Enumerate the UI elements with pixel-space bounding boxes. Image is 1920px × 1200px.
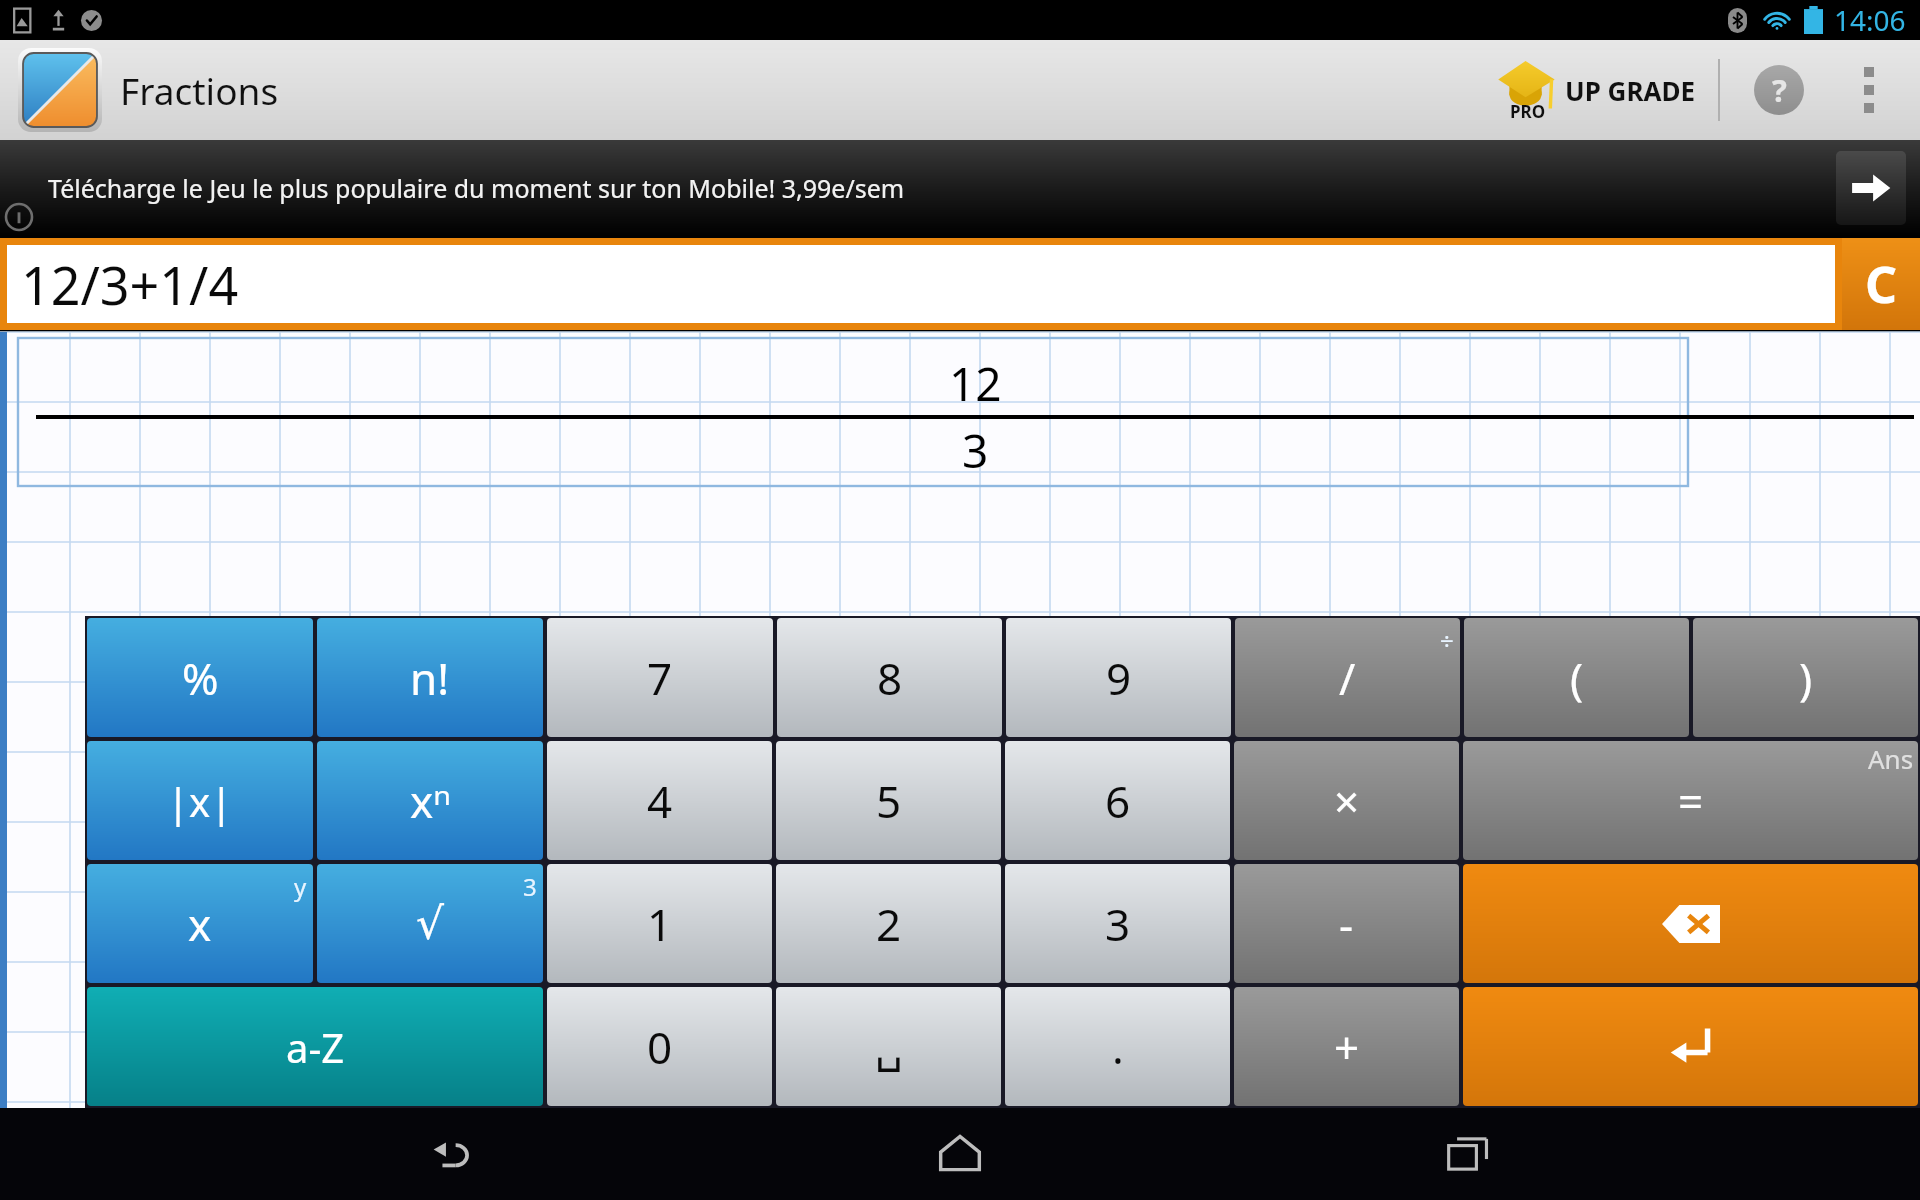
staticText: . bbox=[1112, 1017, 1124, 1077]
staticText: |x| bbox=[167, 774, 233, 828]
button[interactable]: Ad info bbox=[4, 202, 34, 232]
button[interactable]: a-Z bbox=[87, 987, 543, 1106]
button[interactable]: n! bbox=[317, 618, 543, 737]
button[interactable]: Open ad bbox=[1836, 151, 1906, 225]
staticText: 14:06 bbox=[1834, 1, 1906, 39]
button[interactable]: x bbox=[87, 864, 313, 983]
button[interactable]: 6 bbox=[1005, 741, 1230, 860]
button[interactable]: - bbox=[1234, 864, 1459, 983]
button[interactable]: Help bbox=[1746, 57, 1812, 123]
staticText: ? bbox=[1772, 69, 1787, 111]
button[interactable]: / bbox=[1235, 618, 1460, 737]
button[interactable]: × bbox=[1234, 741, 1459, 860]
staticText: xⁿ bbox=[410, 771, 451, 831]
staticText: ␣ bbox=[875, 1021, 903, 1072]
button[interactable]: Home bbox=[905, 1108, 1015, 1200]
button[interactable]: 12/3+1/4 bbox=[7, 245, 1835, 323]
staticText: a-Z bbox=[286, 1020, 345, 1074]
staticText: 12/3+1/4 bbox=[21, 249, 239, 320]
staticText: 7 bbox=[647, 648, 673, 708]
button[interactable]: Backspace bbox=[1463, 864, 1918, 983]
button[interactable]: 9 bbox=[1006, 618, 1231, 737]
staticText: 12 bbox=[949, 352, 1002, 415]
staticText: UP GRADE bbox=[1565, 73, 1696, 108]
button[interactable]: xⁿ bbox=[317, 741, 543, 860]
staticText: n! bbox=[410, 648, 450, 708]
staticText: 3 bbox=[523, 870, 537, 903]
button[interactable]: Enter bbox=[1463, 987, 1918, 1106]
staticText: ( bbox=[1570, 648, 1584, 708]
button[interactable]: 1 bbox=[547, 864, 772, 983]
button[interactable]: . bbox=[1005, 987, 1230, 1106]
staticText: - bbox=[1339, 894, 1354, 954]
staticText: = bbox=[1678, 771, 1704, 831]
button[interactable]: 4 bbox=[547, 741, 772, 860]
staticText: / bbox=[1339, 648, 1356, 708]
button[interactable]: 2 bbox=[776, 864, 1001, 983]
staticText: % bbox=[182, 648, 219, 708]
staticText: 1 bbox=[647, 894, 673, 954]
staticText: Télécharge le Jeu le plus populaire du m… bbox=[48, 171, 905, 205]
staticText: 9 bbox=[1106, 648, 1132, 708]
staticText: 6 bbox=[1105, 771, 1131, 831]
staticText: PRO bbox=[1510, 100, 1546, 123]
button[interactable]: 8 bbox=[777, 618, 1002, 737]
staticText: √ bbox=[416, 898, 445, 949]
staticText: × bbox=[1334, 771, 1360, 831]
button[interactable]: ) bbox=[1693, 618, 1918, 737]
staticText: + bbox=[1334, 1017, 1360, 1077]
button[interactable]: 0 bbox=[547, 987, 772, 1106]
staticText: 2 bbox=[876, 894, 902, 954]
staticText: 8 bbox=[877, 648, 903, 708]
staticText: 0 bbox=[647, 1017, 673, 1077]
staticText: 3 bbox=[962, 419, 989, 482]
button[interactable]: ( bbox=[1464, 618, 1689, 737]
button[interactable]: More options bbox=[1836, 57, 1902, 123]
staticText: y bbox=[294, 870, 307, 903]
staticText: 5 bbox=[876, 771, 902, 831]
staticText: 3 bbox=[1105, 894, 1131, 954]
button[interactable]: √ bbox=[317, 864, 543, 983]
staticText: ) bbox=[1799, 648, 1813, 708]
button[interactable]: C bbox=[1842, 238, 1920, 330]
button[interactable]: Télécharge le Jeu le plus populaire du m… bbox=[0, 140, 1920, 236]
button[interactable]: = bbox=[1463, 741, 1918, 860]
button[interactable]: ␣ bbox=[776, 987, 1001, 1106]
button[interactable]: 3 bbox=[1005, 864, 1230, 983]
staticText: 4 bbox=[647, 771, 673, 831]
button[interactable]: Back bbox=[398, 1108, 508, 1200]
staticText: x bbox=[188, 894, 212, 954]
button[interactable]: Recent apps bbox=[1413, 1108, 1523, 1200]
button[interactable]: 7 bbox=[547, 618, 773, 737]
button[interactable]: % bbox=[87, 618, 313, 737]
staticText: C bbox=[1865, 250, 1898, 318]
button[interactable]: |x| bbox=[87, 741, 313, 860]
button[interactable]: + bbox=[1234, 987, 1459, 1106]
button[interactable]: PRO bbox=[1491, 49, 1702, 131]
staticText: Fractions bbox=[120, 65, 279, 115]
staticText: Ans bbox=[1868, 741, 1914, 776]
button[interactable]: 5 bbox=[776, 741, 1001, 860]
staticText: ÷ bbox=[1440, 624, 1454, 657]
button[interactable]: Fractions bbox=[0, 48, 291, 132]
